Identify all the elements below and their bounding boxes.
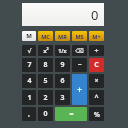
- staticText: x²: [43, 47, 49, 55]
- button[interactable]: 2: [38, 90, 53, 105]
- button[interactable]: −: [72, 58, 87, 72]
- staticText: 2: [43, 93, 48, 103]
- staticText: MS: [75, 33, 84, 40]
- staticText: ÷: [94, 46, 99, 56]
- button[interactable]: MC: [38, 31, 53, 41]
- staticText: %: [94, 110, 100, 119]
- button[interactable]: MR: [55, 31, 70, 41]
- staticText: 8: [43, 60, 48, 70]
- staticText: 9: [60, 60, 65, 70]
- button[interactable]: ^: [89, 90, 104, 105]
- button[interactable]: ×: [89, 74, 104, 88]
- staticText: 0: [43, 109, 48, 119]
- button[interactable]: 3: [55, 90, 70, 105]
- button[interactable]: √: [22, 45, 36, 56]
- button[interactable]: %: [89, 107, 104, 121]
- staticText: MC: [41, 33, 50, 40]
- staticText: =: [69, 109, 74, 119]
- button[interactable]: 4: [22, 74, 36, 88]
- staticText: ^: [94, 93, 99, 103]
- button[interactable]: Backspace: [72, 45, 87, 56]
- staticText: 4: [27, 76, 32, 86]
- staticText: −: [77, 60, 82, 70]
- staticText: 1/x: [58, 47, 67, 54]
- button[interactable]: 5: [38, 74, 53, 88]
- button[interactable]: C: [89, 58, 104, 72]
- button[interactable]: 7: [22, 58, 36, 72]
- staticText: ×: [94, 76, 99, 86]
- button[interactable]: 6: [55, 74, 70, 88]
- staticText: 6: [60, 76, 65, 86]
- button[interactable]: 9: [55, 58, 70, 72]
- staticText: ,: [28, 109, 30, 119]
- button[interactable]: +: [72, 74, 87, 105]
- staticText: ⌫: [75, 47, 84, 54]
- button[interactable]: =: [55, 107, 87, 121]
- staticText: √: [27, 47, 32, 54]
- staticText: 3: [60, 93, 65, 103]
- button[interactable]: 8: [38, 58, 53, 72]
- staticText: +: [77, 84, 82, 95]
- staticText: 0: [91, 6, 99, 24]
- button[interactable]: M+: [89, 31, 104, 41]
- button[interactable]: MS: [72, 31, 87, 41]
- staticText: MR: [58, 33, 67, 40]
- staticText: M+: [92, 33, 101, 40]
- button[interactable]: x²: [38, 45, 53, 56]
- staticText: 5: [43, 76, 48, 86]
- staticText: 7: [27, 60, 32, 70]
- button[interactable]: ÷: [89, 45, 104, 56]
- staticText: 1: [27, 93, 32, 103]
- button[interactable]: ,: [22, 107, 36, 121]
- button[interactable]: 0: [38, 107, 53, 121]
- button[interactable]: Memory: [22, 31, 36, 41]
- button[interactable]: 1/x: [55, 45, 70, 56]
- staticText: C: [94, 60, 99, 70]
- button[interactable]: 1: [22, 90, 36, 105]
- staticText: M: [26, 32, 32, 40]
